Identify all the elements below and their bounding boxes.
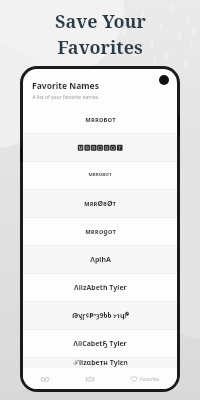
button[interactable]: ΛliϹаbеtҔ Tуlеr <box>23 330 177 357</box>
staticText: ᴍʀʀᴏʙᴏᴛ <box>85 115 116 125</box>
staticText: ΛliϹаbеtҔ Tуlеr <box>73 339 127 349</box>
button[interactable]: ᴍʀʀØʙØᴛ <box>23 190 177 217</box>
staticText: 1 <box>140 9 145 20</box>
staticText: Save Your <box>55 9 146 34</box>
button[interactable]: ΛlizAbeth Tуleг <box>23 274 177 301</box>
staticText: 1 <box>108 43 113 54</box>
button[interactable]: 🅼🆁🆁🅾🅱🅾🆃 <box>23 134 177 161</box>
staticText: Favorites <box>57 35 143 60</box>
staticText: 1 <box>133 47 138 58</box>
staticText: 0 <box>122 27 127 38</box>
button[interactable]: ᴍʀʀᴏʙᴏᴛ <box>23 106 177 133</box>
button[interactable]: Favorite <box>125 372 164 386</box>
button[interactable]: Names <box>36 372 54 386</box>
staticText: 1 <box>152 57 157 68</box>
staticText: A list of your favorite names. <box>32 94 100 101</box>
staticText: 1 <box>158 20 163 31</box>
button[interactable]: ᴹᴿᴿᴼᴮᴼᵀ <box>23 162 177 189</box>
staticText: 🅼🆁🆁🅾🅱🅾🆃 <box>77 144 123 151</box>
staticText: 1 <box>185 14 190 25</box>
button[interactable]: ΛplhA <box>23 246 177 273</box>
staticText: ℱlizαbeтн Tylεn <box>73 358 128 368</box>
staticText: Favorite Names <box>32 80 99 92</box>
staticText: ᴍʀʀᴏƍᴏᴛ <box>85 227 116 237</box>
staticText: Թᶌɼ¢₱ᵌȝ9ხხ ৮℩ɥᖘ <box>72 311 129 321</box>
staticText: ᴍʀʀØʙØᴛ <box>84 199 116 209</box>
staticText: 0 <box>177 31 182 42</box>
staticText: 0 <box>191 27 196 38</box>
staticText: 0 <box>149 38 154 49</box>
staticText: 0 <box>184 58 189 69</box>
staticText: 0 <box>170 4 175 15</box>
staticText: Favorite <box>140 376 159 383</box>
staticText: 0 <box>98 13 103 24</box>
button[interactable]: Թᶌɼ¢₱ᵌȝ9ხხ ৮℩ɥᖘ <box>23 302 177 329</box>
staticText: 1 <box>189 41 194 52</box>
staticText: ΛplhA <box>90 255 111 265</box>
staticText: ΛlizAbeth Tуleг <box>74 283 127 293</box>
staticText: 0 <box>164 50 169 61</box>
button[interactable]: Collections <box>81 372 99 386</box>
staticText: ᴹᴿᴿᴼᴮᴼᵀ <box>88 171 112 181</box>
button[interactable]: ᴍʀʀᴏƍᴏᴛ <box>23 218 177 245</box>
button[interactable]: ℱlizαbeтн Tylεn <box>23 358 177 368</box>
